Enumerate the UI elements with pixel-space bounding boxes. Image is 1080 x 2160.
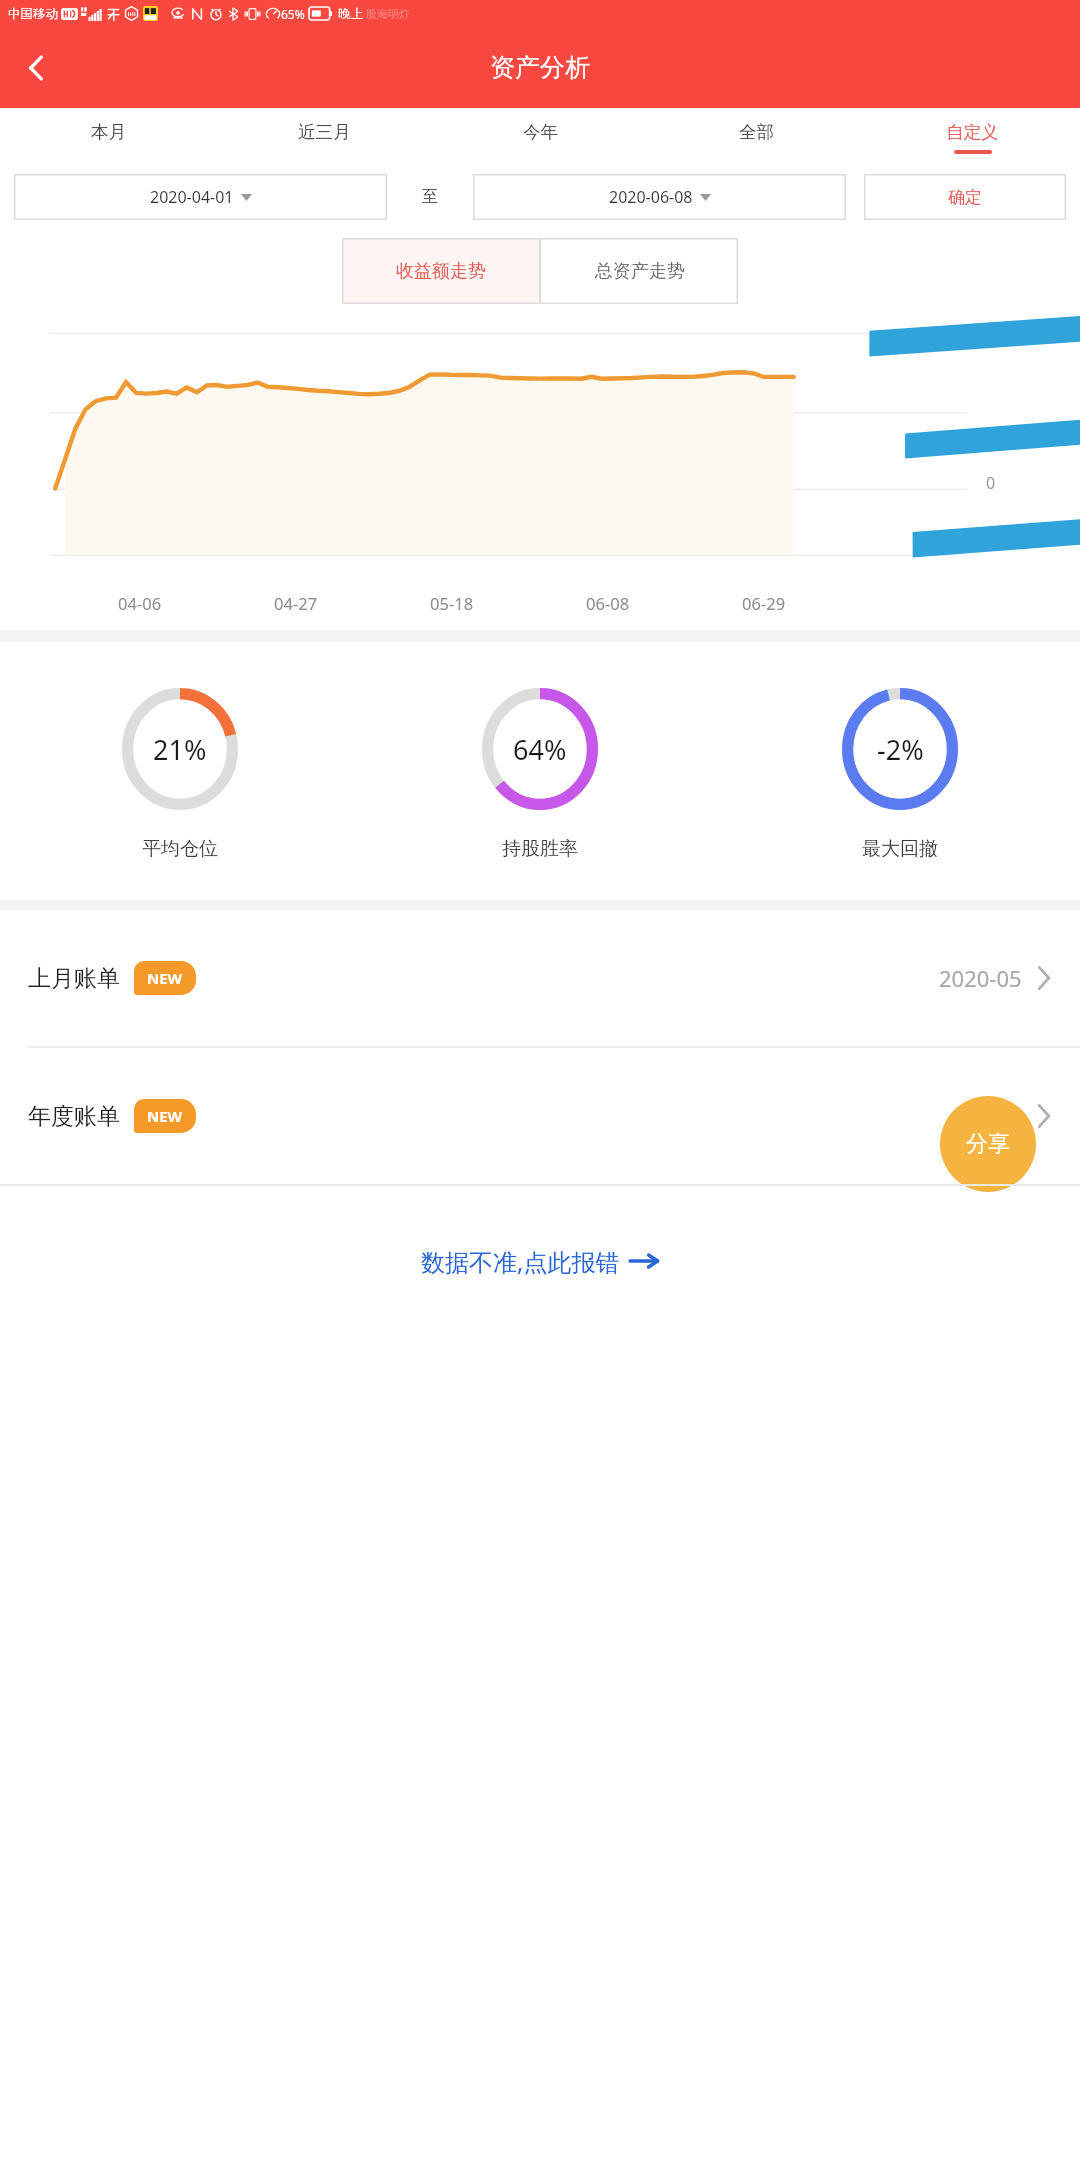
button[interactable]: 2020-04-01 [14, 174, 387, 220]
staticText: 本月 [91, 121, 126, 143]
staticText: 今年 [523, 121, 558, 143]
staticText: 中国移动 [8, 6, 58, 22]
staticText: 2020-05 [939, 963, 1022, 993]
staticText: 平均仓位 [142, 837, 218, 861]
staticText: 资产分析 [490, 52, 590, 83]
staticText: 上月账单 [28, 964, 120, 993]
staticText: 2020-04-01 [150, 186, 234, 208]
staticText: 06-29 [742, 592, 786, 614]
button[interactable]: 近三月 [216, 108, 432, 166]
staticText: 股海明灯 [366, 7, 410, 21]
button[interactable]: 收益额走势 [342, 238, 539, 304]
staticText: 21% [153, 731, 207, 768]
button[interactable]: 上月账单 [0, 910, 1080, 1046]
staticText: 0 [986, 472, 996, 494]
button[interactable]: 64% [360, 681, 720, 861]
button[interactable]: 分享 [940, 1096, 1036, 1192]
button[interactable]: 全部 [648, 108, 864, 166]
staticText: 近三月 [298, 121, 351, 143]
staticText: 2020-06-08 [609, 186, 693, 208]
staticText: 晚上 [338, 6, 363, 22]
staticText: NEW [147, 968, 183, 988]
staticText: 总资产走势 [595, 260, 685, 283]
button[interactable]: 21% [0, 681, 360, 861]
staticText: 65% [281, 6, 305, 22]
button[interactable]: -2% [720, 681, 1080, 861]
staticText: 至 [422, 187, 438, 207]
staticText: 年度账单 [28, 1102, 120, 1131]
staticText: 分享 [966, 1130, 1010, 1158]
staticText: 收益额走势 [396, 260, 486, 283]
button[interactable]: 年度账单 [0, 1048, 1080, 1184]
staticText: 06-08 [586, 592, 630, 614]
button[interactable]: 确定 [864, 174, 1066, 220]
button[interactable]: Back [8, 40, 64, 96]
button[interactable]: 2020-06-08 [473, 174, 846, 220]
staticText: 自定义 [946, 121, 999, 143]
staticText: 64% [513, 731, 567, 768]
staticText: -2% [877, 731, 924, 768]
staticText: 确定 [948, 187, 982, 208]
staticText: 05-18 [430, 592, 474, 614]
staticText: 最大回撤 [862, 837, 938, 861]
staticText: 04-27 [274, 592, 318, 614]
button[interactable]: 自定义 [864, 108, 1080, 166]
staticText: 数据不准,点此报错 [421, 1245, 620, 1278]
button[interactable]: 数据不准,点此报错 [0, 1226, 1080, 1296]
staticText: NEW [147, 1106, 183, 1126]
staticText: 全部 [739, 121, 774, 143]
button[interactable]: 今年 [432, 108, 648, 166]
button[interactable]: 总资产走势 [541, 238, 738, 304]
staticText: 04-06 [118, 592, 162, 614]
staticText: 持股胜率 [502, 837, 578, 861]
button[interactable]: 本月 [0, 108, 216, 166]
